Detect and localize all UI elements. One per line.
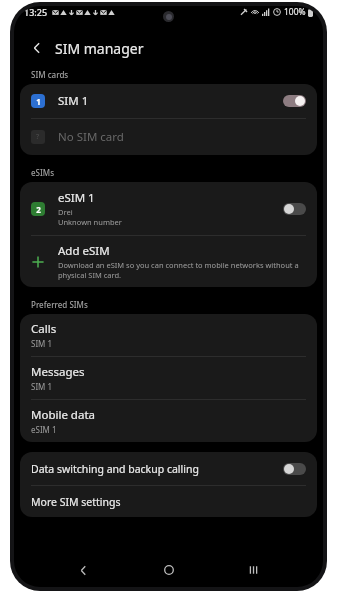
button[interactable]: ?	[20, 119, 317, 155]
button[interactable]: Toggle off	[283, 203, 306, 215]
staticText: SIM 1	[31, 381, 53, 392]
staticText: Data switching and backup calling	[31, 462, 283, 476]
staticText: Unknown number	[58, 217, 122, 227]
staticText: Drei	[58, 207, 73, 217]
staticText: Mobile data	[31, 407, 95, 423]
button[interactable]: Toggle off	[283, 463, 306, 475]
button[interactable]: Add eSIM	[20, 236, 317, 287]
staticText: Download an eSIM so you can connect to m…	[58, 260, 306, 280]
button[interactable]: 2	[20, 182, 317, 235]
button[interactable]: Back	[66, 553, 100, 587]
button[interactable]: 1	[20, 84, 317, 118]
staticText: SIM 1	[31, 338, 53, 349]
staticText: ?	[36, 132, 40, 142]
button[interactable]: More SIM settings	[20, 486, 317, 517]
staticText: Preferred SIMs	[31, 299, 88, 310]
staticText: Messages	[31, 364, 85, 380]
button[interactable]: Home	[152, 553, 186, 587]
button[interactable]: Recents	[237, 553, 271, 587]
staticText: SIM manager	[55, 39, 144, 58]
staticText: SIM cards	[31, 69, 69, 80]
button[interactable]: Calls	[20, 314, 317, 356]
staticText: No SIM card	[58, 129, 124, 145]
staticText: Add eSIM	[58, 243, 110, 259]
staticText: 100%	[284, 6, 306, 18]
staticText: Calls	[31, 321, 57, 337]
staticText: 2	[36, 204, 41, 215]
staticText: eSIMs	[31, 167, 55, 178]
button[interactable]: Data switching and backup calling	[20, 452, 317, 485]
staticText: 1	[36, 96, 41, 107]
staticText: eSIM 1	[31, 424, 57, 435]
staticText: 13:25	[24, 6, 48, 18]
button[interactable]: Toggle on	[283, 95, 306, 107]
button[interactable]: Back	[24, 35, 50, 61]
button[interactable]: Messages	[20, 357, 317, 399]
button[interactable]: Mobile data	[20, 400, 317, 442]
staticText: SIM 1	[58, 93, 283, 109]
staticText: eSIM 1	[58, 190, 95, 206]
staticText: More SIM settings	[31, 495, 121, 509]
